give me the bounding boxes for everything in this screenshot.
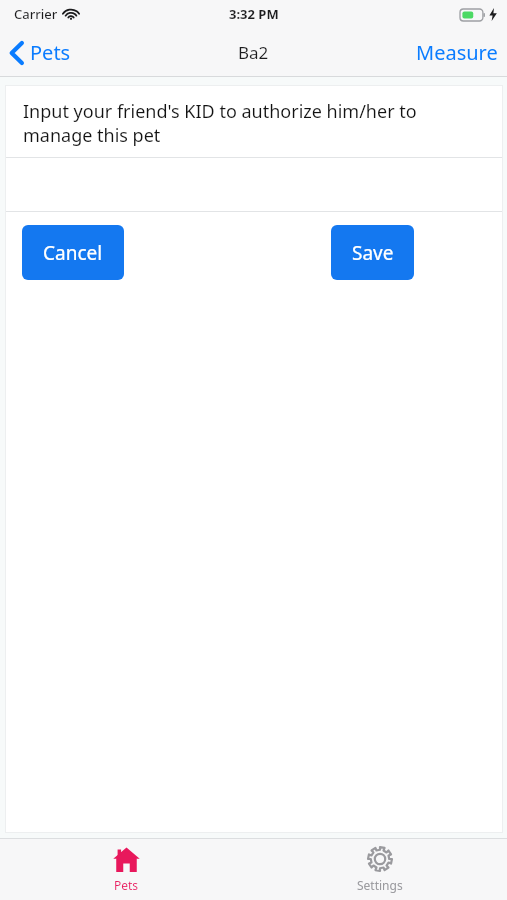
button[interactable]: Pets [0, 33, 83, 72]
button[interactable]: Settings [331, 842, 429, 897]
staticText: Ba2 [238, 41, 269, 64]
staticText: 3:32 PM [229, 5, 279, 23]
staticText: Input your friend's KID to authorize him… [23, 99, 485, 147]
staticText: Pets [30, 39, 71, 66]
other: Settings [367, 846, 393, 872]
staticText: Carrier [14, 5, 58, 23]
staticText: Save [352, 240, 394, 266]
staticText: Cancel [43, 240, 103, 266]
staticText: Pets [114, 877, 139, 893]
button[interactable]: Save [331, 225, 414, 280]
button[interactable] [5, 157, 503, 212]
staticText: Measure [416, 39, 498, 66]
button[interactable]: Measure [407, 33, 507, 72]
button[interactable]: Cancel [22, 225, 124, 280]
staticText: Settings [357, 877, 403, 893]
other: Pets [113, 847, 140, 872]
button[interactable]: Pets [87, 843, 166, 897]
